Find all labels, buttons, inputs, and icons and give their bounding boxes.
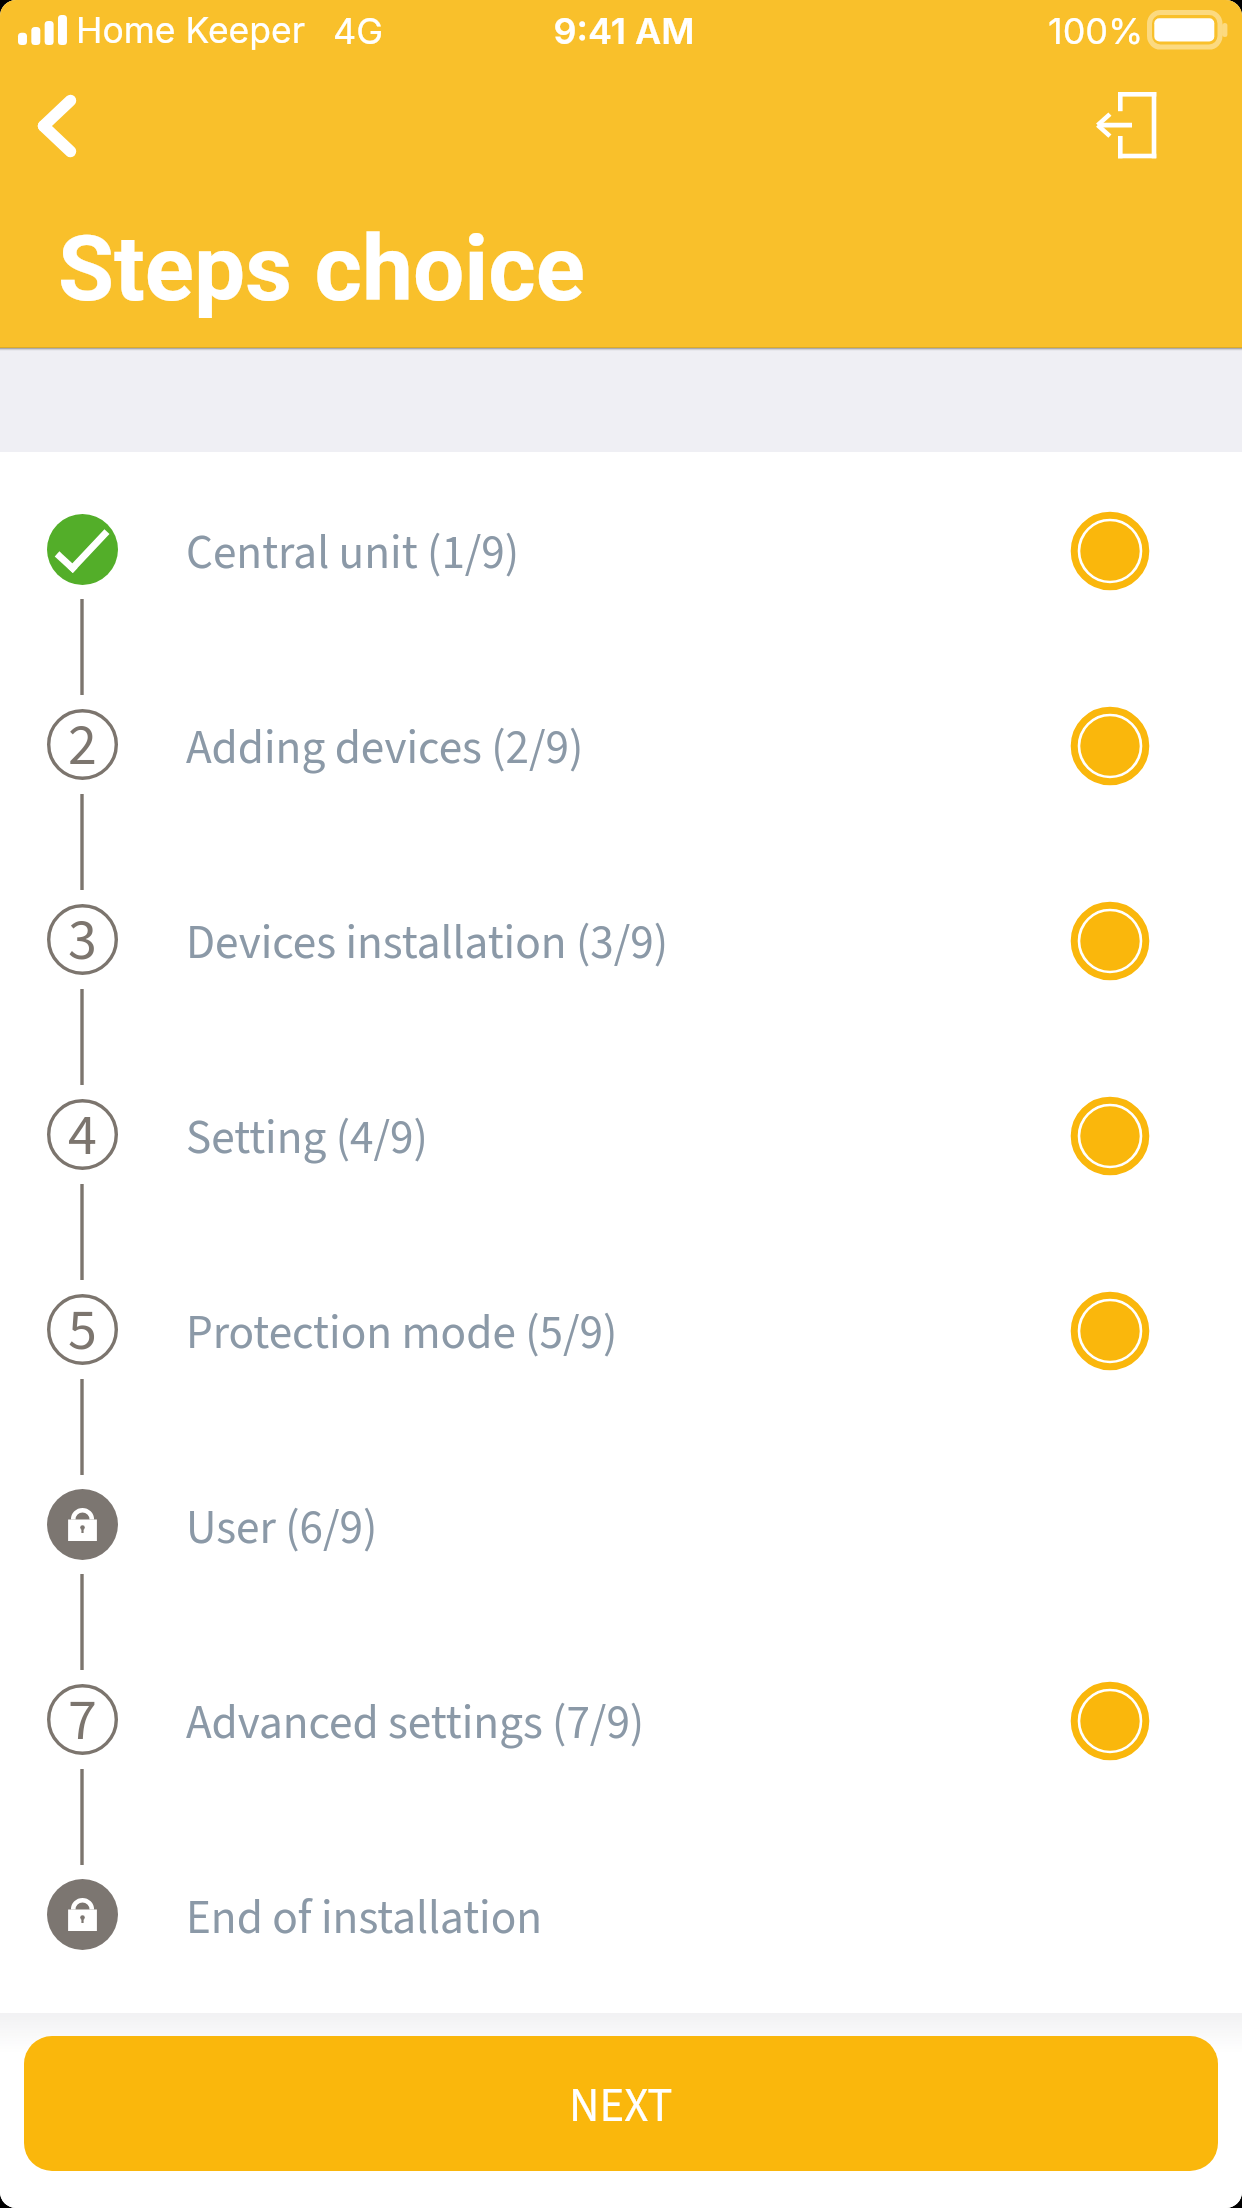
staticText: 7 [68,1680,97,1751]
button[interactable]: 3 [0,842,1242,1037]
staticText: Central unit (1/9) [186,520,520,587]
staticText: End of installation [186,1885,543,1952]
button[interactable]: Log out [1080,70,1200,190]
staticText: 4G [333,9,384,53]
staticText: NEXT [569,2073,673,2140]
button[interactable]: 4 [0,1037,1242,1232]
staticText: Setting (4/9) [186,1105,428,1172]
staticText: User (6/9) [186,1495,378,1562]
staticText: 3 [68,900,97,971]
staticText: Advanced settings (7/9) [186,1690,645,1757]
staticText: Steps choice [58,216,585,323]
staticText: Devices installation (3/9) [186,910,669,977]
button[interactable]: NEXT [24,2036,1218,2171]
button[interactable]: 7 [0,1622,1242,1817]
staticText: Adding devices (2/9) [186,715,584,782]
button[interactable]: End of installation [0,1817,1242,2012]
button[interactable]: 5 [0,1232,1242,1427]
staticText: 100% [1048,9,1144,53]
staticText: Protection mode (5/9) [186,1300,618,1367]
staticText: 5 [68,1290,97,1361]
button[interactable]: Back [0,70,116,186]
staticText: Home Keeper [76,9,306,52]
button[interactable]: User (6/9) [0,1427,1242,1622]
staticText: 9:41 AM [553,9,695,53]
staticText: 2 [68,705,97,776]
button[interactable]: 2 [0,647,1242,842]
staticText: 4 [68,1095,97,1166]
button[interactable]: Central unit (1/9) [0,452,1242,647]
